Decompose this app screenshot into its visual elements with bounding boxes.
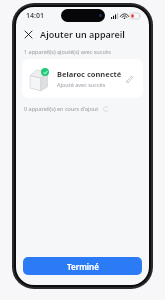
staticText: Belaroc connecté: [57, 69, 122, 79]
button[interactable]: Terminé: [23, 257, 142, 275]
button[interactable]: Fermer: [21, 27, 36, 42]
button[interactable]: Renommer: [122, 72, 136, 86]
button[interactable]: Belaroc connecté: [22, 59, 143, 98]
staticText: 1 appareil(s) ajouté(s) avec succès: [24, 48, 111, 55]
staticText: Ajouté avec succès: [57, 81, 106, 88]
staticText: Terminé: [67, 261, 99, 272]
staticText: 0 appareil(s) en cours d'ajout: [24, 105, 99, 112]
staticText: Ajouter un appareil: [40, 28, 125, 40]
staticText: 14:01: [26, 11, 44, 21]
